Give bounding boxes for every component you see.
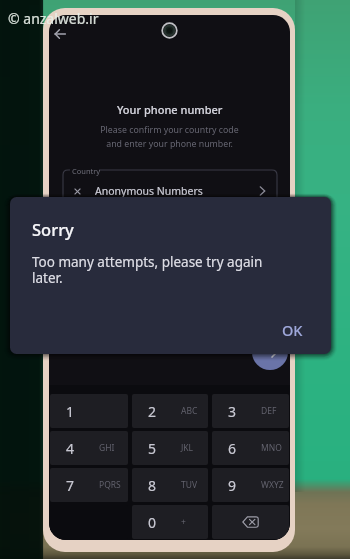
other: Backspace: [212, 505, 289, 539]
button[interactable]: 9: [212, 468, 289, 502]
button[interactable]: Sorry: [10, 197, 331, 354]
button[interactable]: [50, 505, 128, 539]
button[interactable]: Next: [252, 334, 288, 370]
staticText: 5: [148, 439, 157, 458]
button[interactable]: 4: [50, 431, 128, 465]
button[interactable]: Back: [49, 19, 75, 49]
staticText: 3: [228, 402, 237, 421]
staticText: Anonymous Numbers: [95, 184, 203, 198]
button[interactable]: 6: [212, 431, 289, 465]
button[interactable]: 1: [50, 394, 128, 428]
staticText: 2: [148, 402, 157, 421]
staticText: 6: [228, 439, 237, 458]
staticText: Your phone number: [117, 102, 223, 117]
button[interactable]: 8: [132, 468, 208, 502]
button[interactable]: 3: [212, 394, 289, 428]
staticText: 7: [66, 476, 75, 495]
staticText: Sorry: [32, 218, 74, 240]
staticText: 8: [148, 476, 157, 495]
staticText: +: [181, 516, 186, 528]
staticText: PQRS: [99, 479, 121, 491]
staticText: DEF: [261, 405, 277, 417]
button[interactable]: OK: [271, 313, 313, 347]
button[interactable]: Backspace: [212, 505, 289, 539]
staticText: WXYZ: [261, 479, 284, 491]
staticText: 0: [148, 513, 157, 532]
staticText: Too many attempts, please try again late…: [32, 253, 282, 287]
button[interactable]: 5: [132, 431, 208, 465]
staticText: Country: [72, 166, 101, 176]
staticText: 9: [228, 476, 237, 495]
staticText: 1: [66, 402, 75, 421]
button[interactable]: 2: [132, 394, 208, 428]
staticText: Please confirm your country code and ent…: [100, 124, 239, 149]
staticText: MNO: [261, 442, 282, 454]
staticText: JKL: [181, 442, 194, 454]
button[interactable]: Country: [63, 164, 277, 208]
staticText: ABC: [181, 405, 198, 417]
staticText: OK: [282, 320, 303, 340]
staticText: TUV: [181, 479, 198, 491]
button[interactable]: 0: [132, 505, 208, 539]
staticText: GHI: [99, 442, 115, 454]
staticText: 4: [66, 439, 75, 458]
button[interactable]: 7: [50, 468, 128, 502]
staticText: © anzalweb.ir: [8, 9, 99, 28]
